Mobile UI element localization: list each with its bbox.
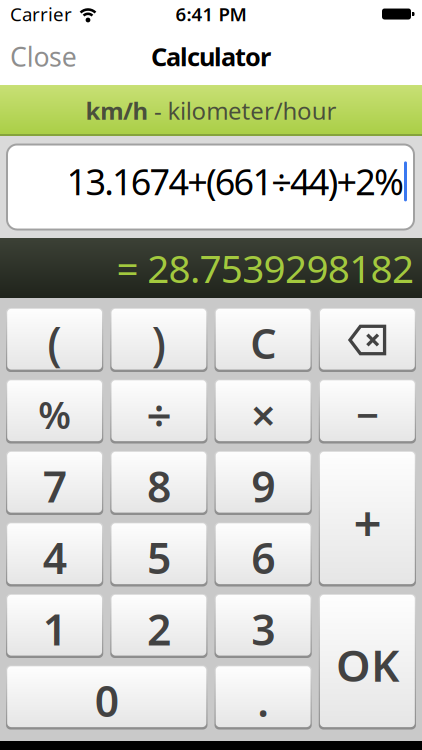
staticText: 0	[95, 672, 119, 729]
staticText: )	[151, 312, 166, 374]
button[interactable]: 2	[110, 594, 207, 658]
button[interactable]	[319, 308, 416, 372]
button[interactable]: +	[319, 451, 416, 586]
staticText: 2	[147, 601, 171, 657]
button[interactable]: 3	[214, 594, 312, 658]
button[interactable]: C	[214, 308, 312, 372]
button[interactable]: .	[214, 665, 312, 729]
staticText: −	[356, 388, 379, 441]
button[interactable]: OK	[319, 594, 416, 729]
staticText: C	[250, 316, 276, 370]
button[interactable]: 0	[6, 665, 207, 729]
staticText: = 28.7539298182	[116, 242, 414, 294]
staticText: Carrier	[10, 2, 72, 26]
staticText: +	[353, 489, 381, 554]
staticText: .	[257, 672, 269, 729]
staticText: Calculator	[151, 40, 271, 73]
staticText: km/h - kilometer/hour	[85, 95, 336, 126]
staticText: 4	[43, 529, 67, 586]
staticText: 6	[251, 529, 275, 586]
staticText: 13.1674+(661÷44)+2%	[67, 157, 404, 205]
button[interactable]: 1	[6, 594, 103, 658]
staticText: OK	[336, 635, 399, 694]
staticText: 8	[147, 458, 171, 514]
staticText: 3	[251, 601, 275, 657]
button[interactable]: (	[6, 308, 103, 372]
button[interactable]: −	[319, 379, 416, 443]
button[interactable]: 5	[110, 522, 207, 586]
button[interactable]: 6	[214, 522, 312, 586]
staticText: %	[38, 390, 71, 439]
staticText: 5	[147, 529, 171, 586]
staticText: ÷	[146, 385, 171, 444]
staticText: 1	[43, 601, 67, 657]
button[interactable]: Close	[0, 39, 77, 74]
staticText: (	[47, 312, 62, 374]
button[interactable]: )	[110, 308, 207, 372]
staticText: ×	[251, 385, 276, 444]
button[interactable]: 8	[110, 451, 207, 515]
staticText: 6:41 PM	[175, 2, 246, 26]
staticText: 9	[251, 458, 275, 514]
button[interactable]: %	[6, 379, 103, 443]
staticText: 7	[43, 458, 67, 514]
button[interactable]: 4	[6, 522, 103, 586]
button[interactable]: 9	[214, 451, 312, 515]
button[interactable]: ÷	[110, 379, 207, 443]
button[interactable]: 7	[6, 451, 103, 515]
button[interactable]: ×	[214, 379, 312, 443]
staticText: Close	[10, 39, 77, 74]
